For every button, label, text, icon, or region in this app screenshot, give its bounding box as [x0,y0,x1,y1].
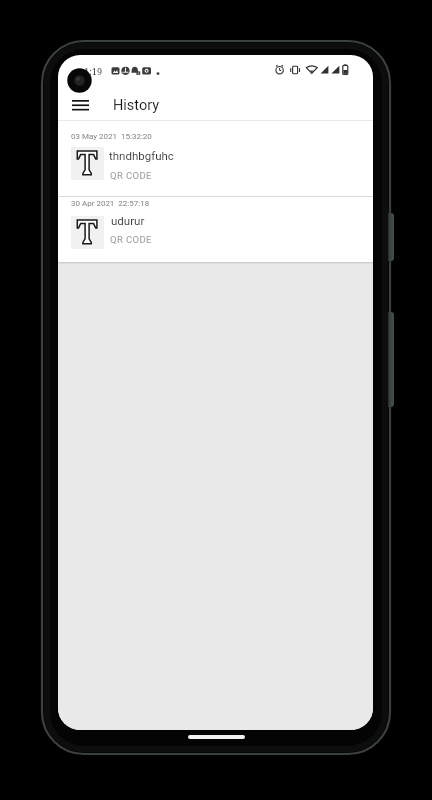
button[interactable] [64,92,96,118]
staticText: History [113,97,160,114]
staticText: QR CODE [110,170,152,181]
staticText: udurur [111,214,145,227]
button[interactable]: thndhbgfuhc [58,142,373,195]
staticText: 1:19 [84,65,103,78]
staticText: 30 Apr 2021 22:57:18 [71,199,150,208]
staticText: 03 May 2021 15:32:20 [71,132,152,141]
button[interactable]: udurur [58,210,373,262]
staticText: thndhbgfuhc [109,149,174,162]
staticText: QR CODE [110,234,152,245]
